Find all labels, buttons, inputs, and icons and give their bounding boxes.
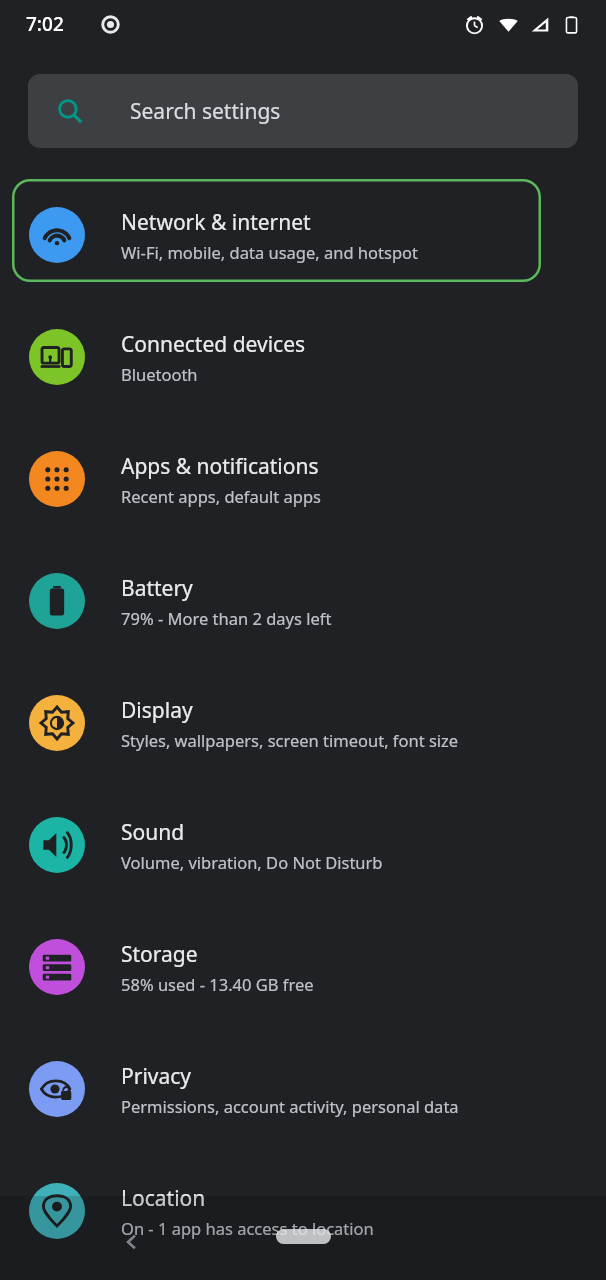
- staticText: Storage: [121, 940, 198, 969]
- staticText: Network & internet: [121, 208, 311, 237]
- staticText: Recent apps, default apps: [121, 485, 321, 507]
- staticText: Location: [121, 1184, 206, 1213]
- staticText: On - 1 app has access to location: [121, 1217, 374, 1239]
- button[interactable]: Storage: [0, 906, 606, 1028]
- staticText: Apps & notifications: [121, 452, 319, 481]
- staticText: Display: [121, 696, 193, 725]
- staticText: Wi-Fi, mobile, data usage, and hotspot: [121, 241, 418, 263]
- staticText: Battery: [121, 574, 193, 603]
- button[interactable]: Location: [0, 1150, 606, 1272]
- button[interactable]: Battery: [0, 540, 606, 662]
- staticText: 58% used - 13.40 GB free: [121, 973, 314, 995]
- button[interactable]: Display: [0, 662, 606, 784]
- button[interactable]: Network & internet: [0, 174, 606, 296]
- staticText: 79% - More than 2 days left: [121, 607, 332, 629]
- button[interactable]: Sound: [0, 784, 606, 906]
- staticText: Permissions, account activity, personal …: [121, 1095, 459, 1117]
- button[interactable]: Apps & notifications: [0, 418, 606, 540]
- button[interactable]: Search settings: [28, 74, 578, 148]
- button[interactable]: Connected devices: [0, 296, 606, 418]
- staticText: 7:02: [26, 11, 64, 37]
- staticText: Bluetooth: [121, 363, 198, 385]
- button[interactable]: Privacy: [0, 1028, 606, 1150]
- staticText: Sound: [121, 818, 185, 847]
- staticText: Volume, vibration, Do Not Disturb: [121, 851, 383, 873]
- staticText: Privacy: [121, 1062, 192, 1091]
- staticText: Search settings: [130, 97, 281, 126]
- staticText: Connected devices: [121, 330, 306, 359]
- staticText: Styles, wallpapers, screen timeout, font…: [121, 729, 459, 751]
